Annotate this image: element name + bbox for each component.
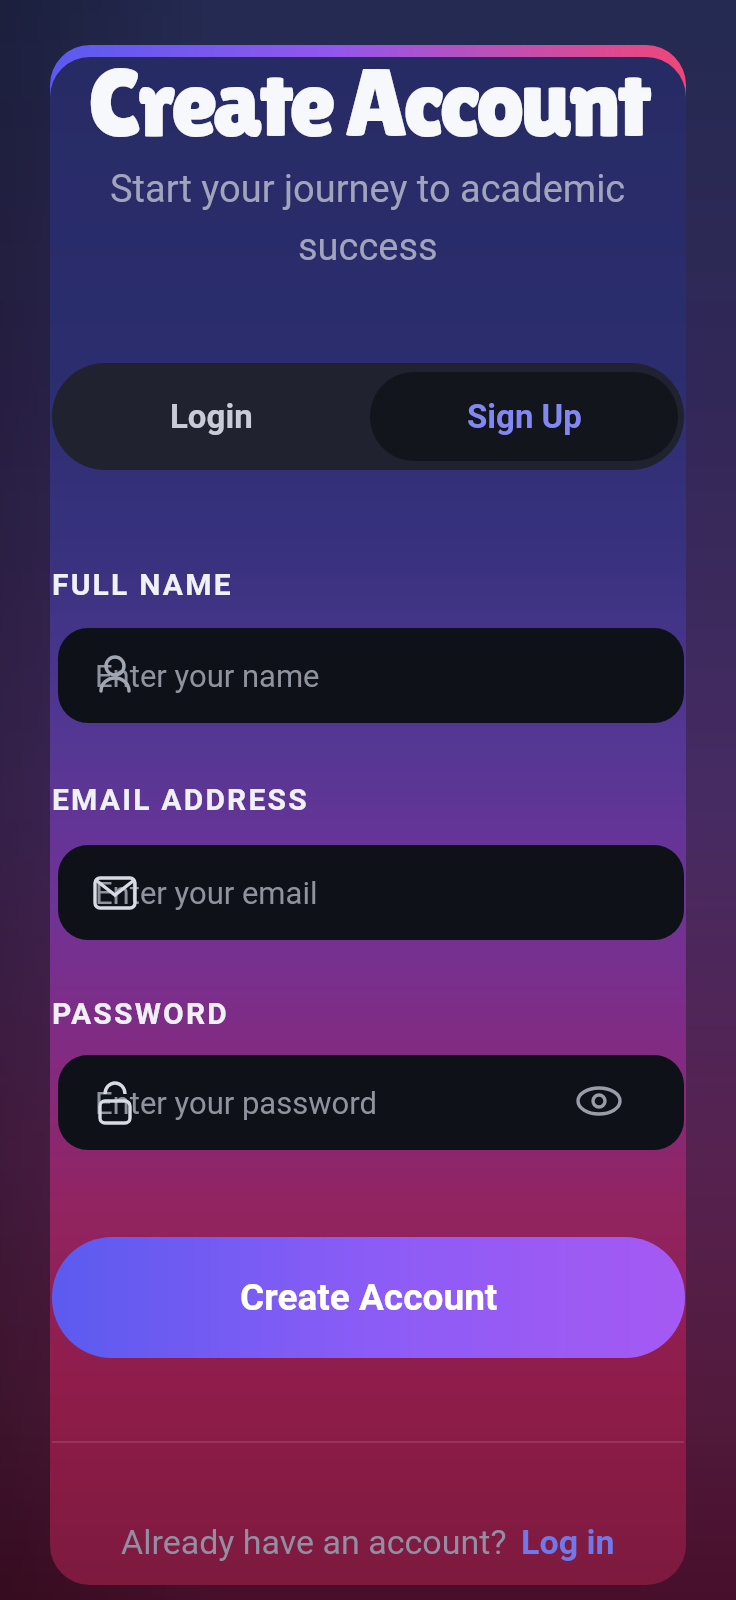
staticText: Login [170, 397, 253, 436]
staticText: success [298, 225, 438, 270]
button[interactable]: Create Account [52, 1237, 685, 1358]
staticText: PASSWORD [52, 996, 230, 1031]
staticText: Already have an account? [121, 1522, 507, 1562]
staticText: FULL NAME [52, 567, 233, 602]
button[interactable] [568, 1070, 630, 1132]
button[interactable]: Sign Up [370, 372, 678, 461]
button[interactable]: Log in [521, 1522, 615, 1562]
staticText: Enter your email [95, 875, 318, 911]
button[interactable]: Enter your email [58, 845, 684, 940]
button[interactable]: Enter your name [58, 628, 684, 723]
staticText: Sign Up [467, 397, 582, 436]
button[interactable]: Enter your password [58, 1055, 684, 1150]
staticText: Log in [521, 1522, 615, 1562]
staticText: Start your journey to academic [110, 167, 626, 212]
staticText: Enter your name [95, 658, 320, 694]
button[interactable]: Login [52, 363, 370, 470]
staticText: Create Account [88, 47, 648, 157]
staticText: EMAIL ADDRESS [52, 782, 309, 817]
staticText: Enter your password [95, 1085, 377, 1121]
staticText: Create Account [240, 1276, 498, 1319]
